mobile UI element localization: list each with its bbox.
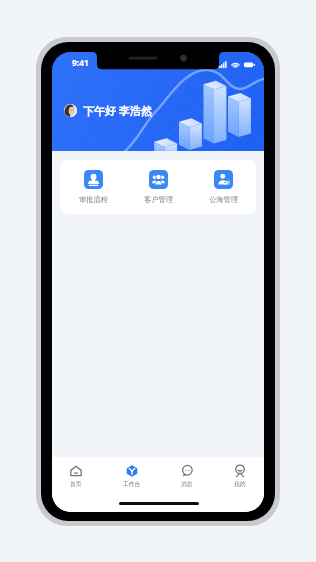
- button[interactable]: 我的: [234, 465, 246, 487]
- staticText: 公海管理: [209, 195, 238, 204]
- button[interactable]: 首页: [70, 465, 82, 487]
- button[interactable]: 公海管理: [190, 160, 255, 214]
- staticText: 审批流程: [79, 195, 108, 204]
- button[interactable]: 消息: [181, 465, 193, 487]
- staticText: 客户管理: [144, 195, 173, 204]
- staticText: 我的: [234, 480, 246, 487]
- staticText: 首页: [70, 480, 82, 487]
- button[interactable]: 客户管理: [125, 160, 190, 214]
- button[interactable]: 审批流程: [60, 160, 125, 214]
- staticText: 工作台: [123, 480, 141, 487]
- staticText: 消息: [181, 480, 193, 487]
- staticText: 9:41: [72, 57, 89, 68]
- staticText: 下午好 李浩然: [83, 103, 152, 118]
- button[interactable]: 工作台: [123, 465, 141, 487]
